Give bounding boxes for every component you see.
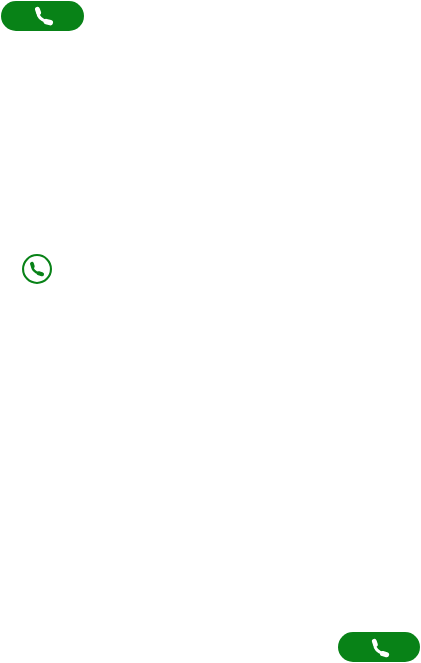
button[interactable]: Call: [1, 1, 84, 31]
button[interactable]: Call: [338, 632, 420, 662]
button[interactable]: Call: [22, 254, 52, 284]
